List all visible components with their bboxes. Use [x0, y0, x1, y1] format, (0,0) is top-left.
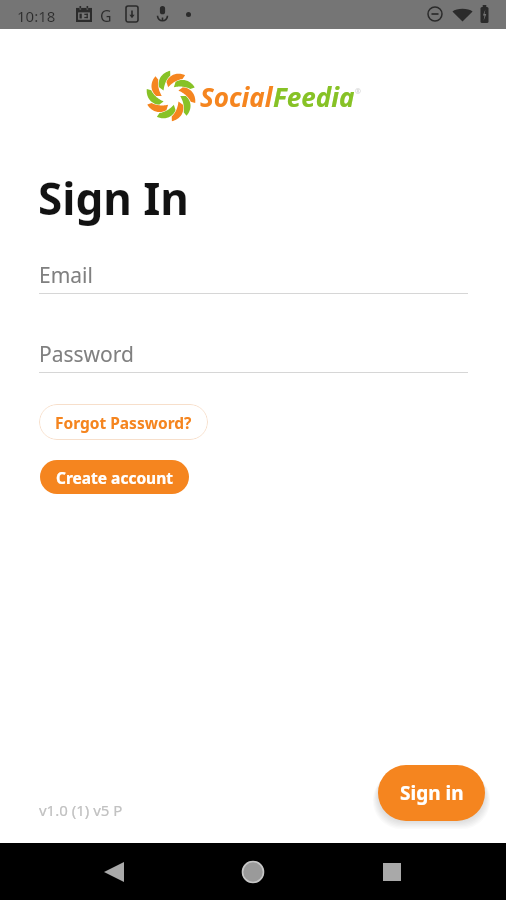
button[interactable]: Sign in: [378, 765, 485, 821]
staticText: Password: [39, 340, 134, 369]
button[interactable]: Email: [39, 261, 468, 294]
staticText: Feedia: [273, 79, 355, 114]
button[interactable]: Password: [39, 340, 468, 373]
staticText: 10:18: [17, 6, 56, 26]
staticText: ®: [355, 87, 361, 97]
button[interactable]: Home: [228, 847, 278, 897]
staticText: Email: [39, 261, 93, 290]
staticText: Create account: [56, 467, 173, 488]
button[interactable]: Forgot Password?: [39, 404, 208, 440]
staticText: Sign In: [38, 168, 189, 228]
staticText: v1.0 (1) v5 P: [39, 800, 123, 820]
button[interactable]: Create account: [40, 460, 189, 494]
staticText: Sign in: [400, 780, 464, 806]
staticText: Forgot Password?: [55, 412, 192, 433]
button[interactable]: Recents: [367, 847, 417, 897]
button[interactable]: Back: [89, 847, 139, 897]
staticText: Social: [200, 79, 273, 114]
staticText: G: [100, 5, 112, 27]
